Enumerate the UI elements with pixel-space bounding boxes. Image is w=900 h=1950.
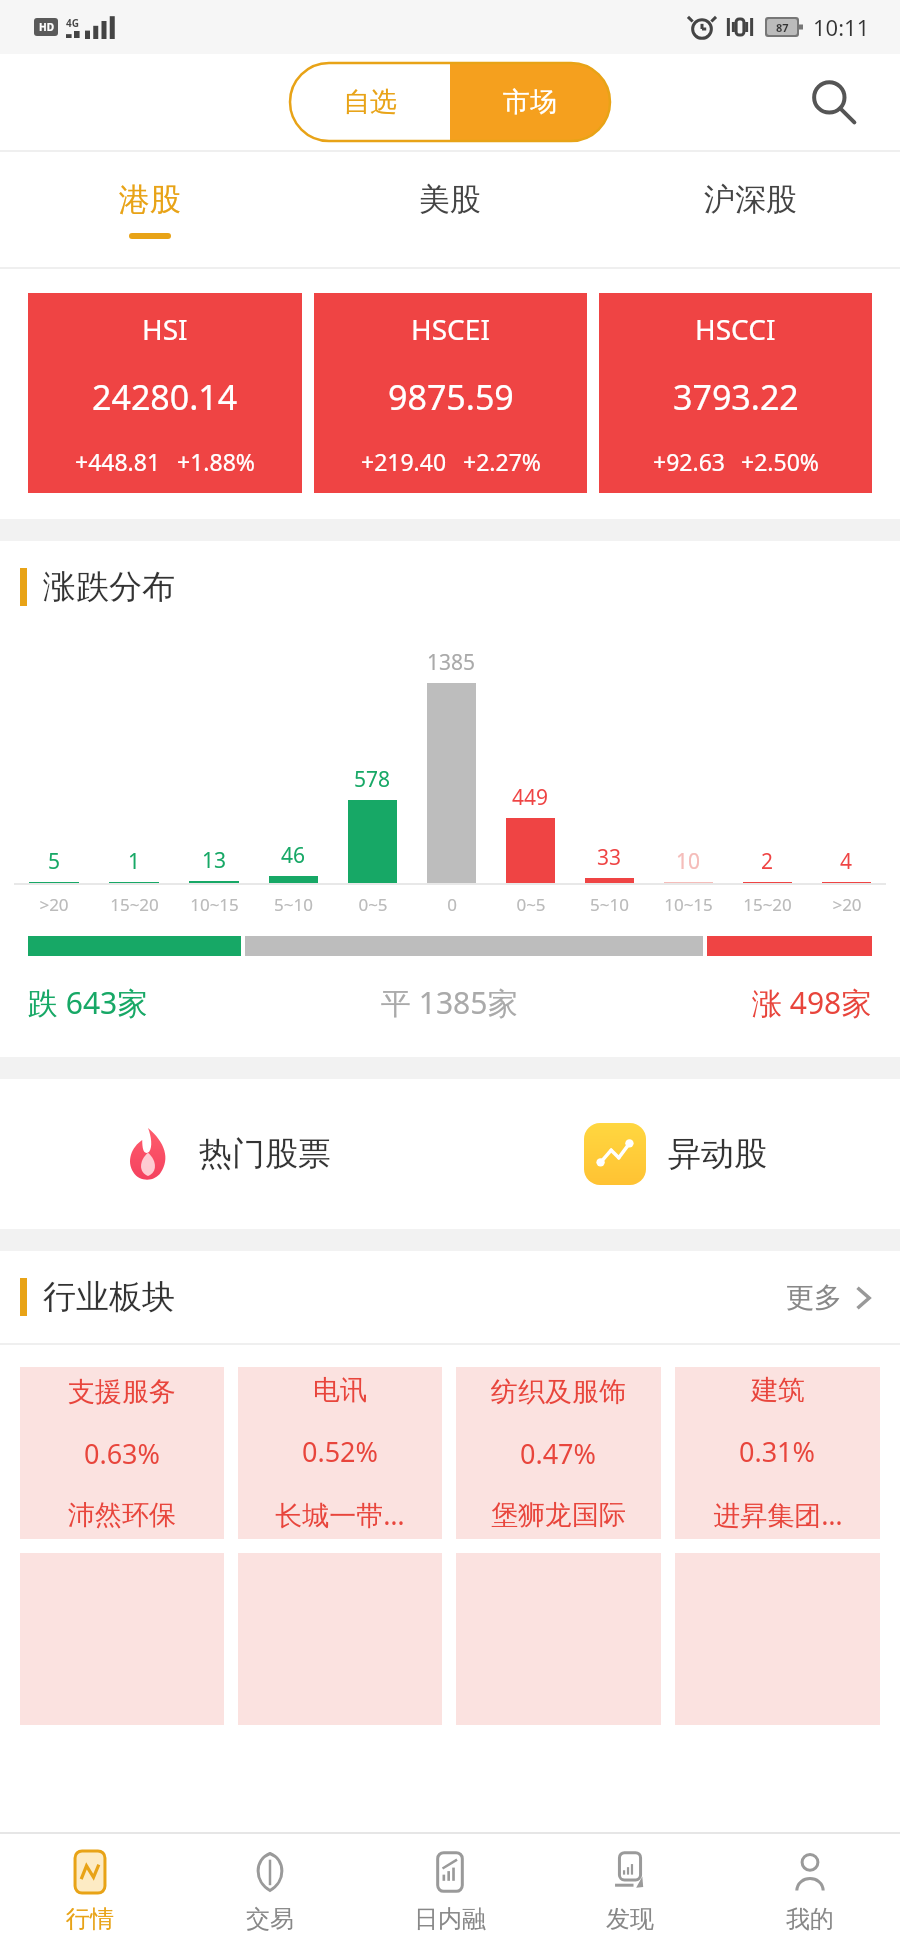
staticText: 1385 bbox=[427, 648, 476, 677]
staticText: 发现 bbox=[606, 1904, 654, 1934]
staticText: 4 bbox=[840, 847, 853, 876]
staticText: 0.47% bbox=[520, 1435, 597, 1472]
staticText: +219.40 bbox=[361, 446, 447, 477]
staticText: +2.50% bbox=[741, 446, 819, 477]
staticText: 热门股票 bbox=[199, 1133, 331, 1175]
button[interactable]: 建筑 bbox=[675, 1367, 880, 1539]
staticText: 15~20 bbox=[743, 893, 792, 916]
staticText: 平 1385家 bbox=[381, 982, 518, 1023]
staticText: 异动股 bbox=[668, 1133, 767, 1175]
button[interactable]: 发现 bbox=[540, 1834, 720, 1950]
staticText: 电讯 bbox=[313, 1373, 367, 1407]
button[interactable]: 支援服务 bbox=[20, 1367, 224, 1539]
staticText: 5~10 bbox=[590, 893, 629, 916]
staticText: 港股 bbox=[119, 180, 181, 219]
button[interactable]: 自选 bbox=[290, 63, 450, 141]
staticText: 行情 bbox=[66, 1904, 114, 1934]
staticText: 0.63% bbox=[84, 1435, 161, 1472]
button[interactable]: 电讯 bbox=[238, 1367, 442, 1539]
staticText: +92.63 bbox=[653, 446, 725, 477]
staticText: 进昇集团… bbox=[713, 1496, 843, 1533]
staticText: 33 bbox=[597, 843, 622, 872]
staticText: 交易 bbox=[246, 1904, 294, 1934]
button[interactable]: 市场 bbox=[450, 63, 610, 141]
staticText: 市场 bbox=[503, 85, 557, 119]
staticText: 行业板块 bbox=[43, 1276, 175, 1318]
staticText: 9875.59 bbox=[388, 374, 514, 420]
staticText: +448.81 bbox=[75, 446, 161, 477]
staticText: 449 bbox=[512, 783, 549, 812]
staticText: 日内融 bbox=[414, 1904, 486, 1934]
staticText: 3793.22 bbox=[673, 374, 799, 420]
staticText: 10:11 bbox=[813, 12, 870, 42]
button[interactable]: 我的 bbox=[720, 1834, 900, 1950]
staticText: 沪深股 bbox=[704, 180, 797, 219]
staticText: 0.52% bbox=[302, 1433, 379, 1470]
staticText: HSI bbox=[142, 310, 188, 348]
staticText: +2.27% bbox=[463, 446, 541, 477]
button[interactable]: 纺织及服饰 bbox=[456, 1367, 661, 1539]
button[interactable]: 美股 bbox=[300, 152, 600, 267]
staticText: 纺织及服饰 bbox=[491, 1375, 626, 1409]
button[interactable]: HSCEI bbox=[314, 293, 587, 493]
staticText: 自选 bbox=[343, 85, 397, 119]
staticText: 沛然环保 bbox=[68, 1498, 176, 1532]
staticText: 10~15 bbox=[664, 893, 713, 916]
staticText: 24280.14 bbox=[92, 374, 238, 420]
staticText: >20 bbox=[39, 893, 69, 916]
staticText: 4G bbox=[66, 16, 79, 30]
button[interactable]: 沪深股 bbox=[600, 152, 900, 267]
button[interactable]: 热门股票 bbox=[0, 1079, 450, 1229]
staticText: +1.88% bbox=[177, 446, 255, 477]
staticText: >20 bbox=[832, 893, 862, 916]
staticText: 46 bbox=[281, 841, 306, 870]
staticText: 15~20 bbox=[110, 893, 159, 916]
staticText: 支援服务 bbox=[68, 1375, 176, 1409]
staticText: 13 bbox=[202, 846, 227, 875]
staticText: 0 bbox=[447, 893, 457, 916]
staticText: 美股 bbox=[419, 180, 481, 219]
staticText: 我的 bbox=[786, 1904, 834, 1934]
button[interactable]: 交易 bbox=[180, 1834, 360, 1950]
staticText: HSCEI bbox=[411, 310, 490, 348]
staticText: 涨 498家 bbox=[752, 982, 872, 1023]
button[interactable]: 港股 bbox=[0, 152, 300, 267]
staticText: 堡狮龙国际 bbox=[491, 1498, 626, 1532]
staticText: 578 bbox=[354, 765, 391, 794]
staticText: 1 bbox=[128, 847, 141, 876]
staticText: 建筑 bbox=[751, 1373, 805, 1407]
staticText: 10 bbox=[676, 847, 701, 876]
staticText: 涨跌分布 bbox=[43, 566, 175, 608]
staticText: 更多 bbox=[786, 1280, 842, 1315]
staticText: 5~10 bbox=[274, 893, 313, 916]
button[interactable]: 更多 bbox=[780, 1274, 880, 1321]
staticText: 0.31% bbox=[739, 1433, 816, 1470]
button[interactable]: 日内融 bbox=[360, 1834, 540, 1950]
button[interactable]: HSCCI bbox=[599, 293, 872, 493]
staticText: 87 bbox=[776, 20, 789, 35]
staticText: 10~15 bbox=[190, 893, 239, 916]
button[interactable]: HSI bbox=[28, 293, 302, 493]
button[interactable]: 异动股 bbox=[450, 1079, 900, 1229]
staticText: 跌 643家 bbox=[28, 982, 148, 1023]
button[interactable]: 行情 bbox=[0, 1834, 180, 1950]
staticText: 5 bbox=[48, 847, 61, 876]
staticText: 长城一带… bbox=[275, 1496, 405, 1533]
staticText: 0~5 bbox=[516, 893, 546, 916]
staticText: 2 bbox=[761, 847, 774, 876]
button[interactable]: Search bbox=[802, 71, 864, 133]
staticText: 0~5 bbox=[358, 893, 388, 916]
staticText: HD bbox=[39, 20, 54, 34]
staticText: HSCCI bbox=[695, 310, 776, 348]
